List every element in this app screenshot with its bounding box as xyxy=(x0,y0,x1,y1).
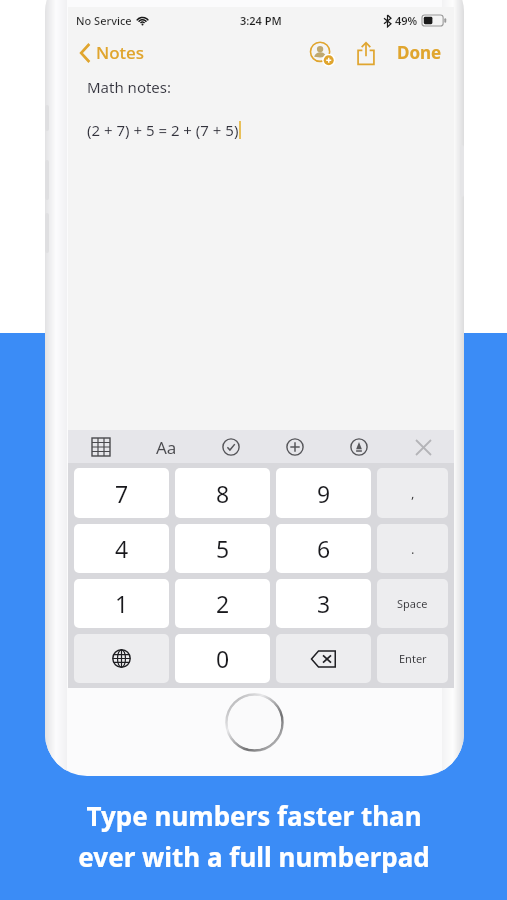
staticText: . xyxy=(411,540,415,558)
staticText: 9 xyxy=(317,478,331,509)
staticText: Notes xyxy=(96,41,145,64)
button[interactable]: 2 xyxy=(175,579,270,628)
button[interactable]: Draw xyxy=(344,432,374,462)
button[interactable]: 8 xyxy=(175,468,270,518)
staticText: 6 xyxy=(317,533,331,564)
button[interactable]: Add people xyxy=(307,38,337,68)
staticText: Aa xyxy=(156,436,177,459)
staticText: 3:24 PM xyxy=(240,13,282,28)
other: Home xyxy=(225,693,284,752)
button[interactable]: Aa xyxy=(151,432,181,462)
staticText: Enter xyxy=(399,651,427,666)
staticText: (2 + 7) + 5 = 2 + (7 + 5) xyxy=(87,120,239,140)
staticText: Done xyxy=(397,41,442,64)
button[interactable]: 5 xyxy=(175,524,270,573)
button[interactable]: Table xyxy=(86,432,116,462)
staticText: ever with a full numberpad xyxy=(78,839,430,874)
button[interactable]: Enter xyxy=(377,634,448,683)
button[interactable]: Done xyxy=(393,37,446,68)
button[interactable]: Share xyxy=(351,38,381,68)
staticText: 1 xyxy=(115,588,129,619)
staticText: 8 xyxy=(216,478,230,509)
button[interactable]: 6 xyxy=(276,524,371,573)
button[interactable]: Switch keyboard xyxy=(74,634,169,683)
button[interactable]: Close keyboard xyxy=(408,432,438,462)
staticText: 7 xyxy=(115,478,129,509)
button[interactable]: 0 xyxy=(175,634,270,683)
staticText: 3 xyxy=(317,588,331,619)
staticText: , xyxy=(411,484,415,502)
button[interactable]: 3 xyxy=(276,579,371,628)
staticText: Space xyxy=(397,596,428,611)
button[interactable]: Delete xyxy=(276,634,371,683)
button[interactable]: 7 xyxy=(74,468,169,518)
staticText: 2 xyxy=(216,588,230,619)
button[interactable]: , xyxy=(377,468,448,518)
staticText: 0 xyxy=(216,643,230,674)
button[interactable]: 1 xyxy=(74,579,169,628)
staticText: No Service xyxy=(76,13,132,28)
button[interactable]: 4 xyxy=(74,524,169,573)
button[interactable]: Space xyxy=(377,579,448,628)
button[interactable]: Add xyxy=(280,432,310,462)
button[interactable]: . xyxy=(377,524,448,573)
button[interactable]: Notes xyxy=(76,37,149,68)
staticText: Type numbers faster than xyxy=(86,798,422,833)
button[interactable]: Checklist xyxy=(216,432,246,462)
staticText: 4 xyxy=(115,533,129,564)
staticText: Math notes: xyxy=(87,77,172,97)
staticText: 5 xyxy=(216,533,230,564)
button[interactable]: 9 xyxy=(276,468,371,518)
staticText: 49% xyxy=(395,13,418,28)
